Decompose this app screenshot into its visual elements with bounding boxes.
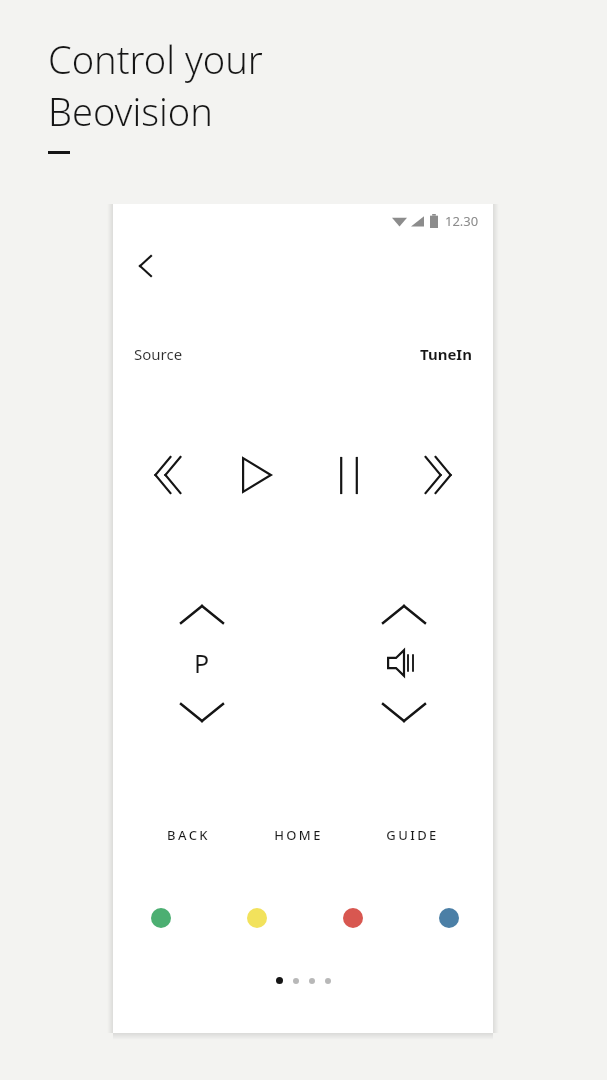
button[interactable]: Program down [171,692,233,732]
button[interactable]: BACK [163,818,214,852]
button[interactable]: Source [113,338,493,370]
button[interactable]: Yellow button [239,900,275,936]
button[interactable] [373,634,435,692]
button[interactable]: Previous [135,444,197,506]
staticText: BACK [167,826,210,844]
button[interactable]: HOME [270,818,327,852]
button[interactable]: Red button [335,900,371,936]
staticText: Control your [48,33,263,85]
button[interactable]: P [171,634,233,692]
button[interactable]: Volume down [373,692,435,732]
button[interactable]: GUIDE [382,818,443,852]
button[interactable]: Back [125,246,165,286]
staticText: GUIDE [386,826,439,844]
button[interactable]: Play [226,444,288,506]
button[interactable]: Blue button [431,900,467,936]
staticText: TuneIn [420,344,472,364]
button[interactable]: Volume up [373,594,435,634]
staticText: Beovision [48,85,213,137]
staticText: P [194,646,210,680]
staticText: HOME [274,826,323,844]
button[interactable]: Program up [171,594,233,634]
button[interactable]: Green button [143,900,179,936]
staticText: Source [134,344,183,364]
button[interactable]: Pause [318,444,380,506]
button[interactable]: Next [409,444,471,506]
staticText: 12.30 [445,212,479,230]
